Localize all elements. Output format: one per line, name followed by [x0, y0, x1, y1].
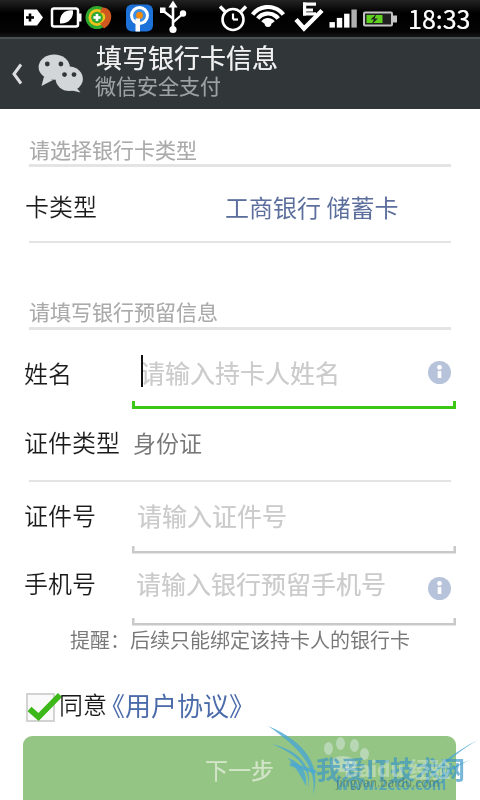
button[interactable]: 手机号 [0, 556, 480, 616]
staticText: Baidu 经验 [344, 753, 451, 783]
button[interactable]: 卡类型 [0, 172, 480, 241]
staticText: 提醒：后续只能绑定该持卡人的银行卡 [70, 625, 410, 654]
staticText: 《用户协议》 [99, 686, 256, 724]
button[interactable]: 证件号 [0, 488, 480, 546]
staticText: 请选择银行卡类型 [29, 134, 197, 164]
staticText: www.2cto.com [336, 773, 447, 795]
staticText: 证件类型 [24, 424, 120, 459]
button[interactable]: 下一步 [23, 736, 456, 800]
button[interactable]: Back [0, 45, 36, 101]
staticText: 填写银行卡信息 [96, 38, 279, 76]
staticText: 18:33 [408, 0, 471, 36]
button[interactable]: 同意 [20, 686, 260, 728]
button[interactable]: 姓名 [0, 340, 480, 402]
staticText: 请输入证件号 [137, 497, 288, 533]
staticText: 工商银行 储蓄卡 [225, 189, 399, 224]
staticText: 微信安全支付 [95, 70, 221, 100]
staticText: 同意 [59, 686, 107, 721]
staticText: 请输入银行预留手机号 [136, 565, 387, 601]
staticText: 姓名 [24, 355, 72, 390]
staticText: jingyan.baidu.com [336, 773, 440, 790]
staticText: 请填写银行预留信息 [29, 296, 218, 326]
button[interactable]: 证件类型 [0, 415, 480, 477]
staticText: 请输入持卡人姓名 [140, 354, 341, 390]
staticText: 卡类型 [25, 188, 97, 223]
staticText: 手机号 [24, 565, 96, 600]
staticText: 下一步 [205, 752, 274, 785]
staticText: 身份证 [133, 425, 202, 458]
staticText: 证件号 [24, 497, 96, 532]
other: Info [428, 577, 451, 600]
staticText: 我爱IT技术网 [316, 750, 465, 786]
other: Info [428, 361, 451, 384]
